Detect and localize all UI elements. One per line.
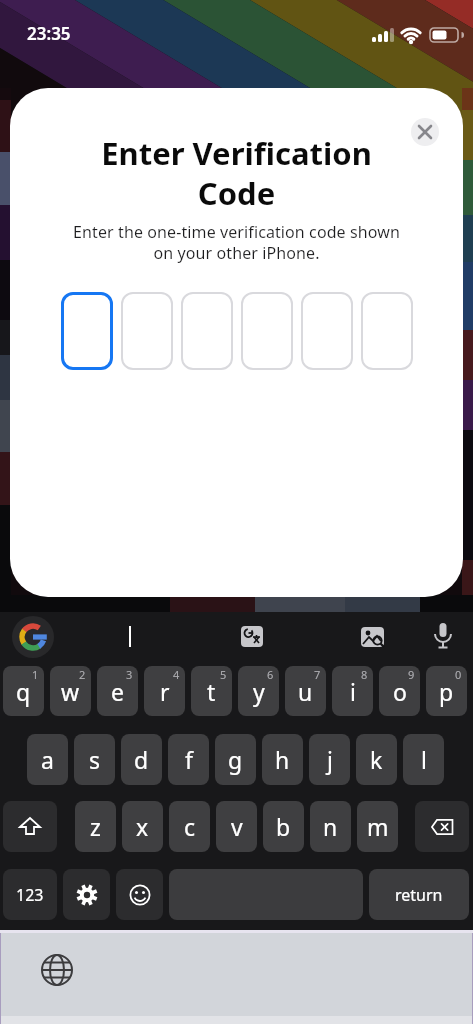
button[interactable] bbox=[121, 292, 173, 370]
staticText: w bbox=[61, 676, 80, 707]
button[interactable]: n bbox=[310, 801, 351, 852]
staticText: 4 bbox=[173, 667, 180, 682]
staticText: 1 bbox=[32, 667, 39, 682]
staticText: j bbox=[327, 744, 333, 775]
button[interactable] bbox=[360, 624, 387, 650]
button[interactable] bbox=[63, 869, 110, 920]
button[interactable]: v bbox=[216, 801, 257, 852]
button[interactable] bbox=[40, 953, 74, 987]
staticText: y bbox=[253, 676, 265, 707]
staticText: a bbox=[41, 744, 54, 775]
button[interactable]: i bbox=[332, 666, 373, 716]
button[interactable]: k bbox=[356, 734, 397, 785]
button[interactable]: a bbox=[27, 734, 68, 785]
staticText: z bbox=[90, 811, 101, 842]
staticText: x bbox=[136, 811, 149, 842]
staticText: 9 bbox=[408, 667, 415, 682]
button[interactable]: p bbox=[426, 666, 467, 716]
staticText: 3 bbox=[126, 667, 133, 682]
button[interactable] bbox=[361, 292, 413, 370]
button[interactable]: w bbox=[50, 666, 91, 716]
button[interactable]: y bbox=[238, 666, 279, 716]
staticText: t bbox=[207, 676, 216, 707]
button[interactable] bbox=[240, 624, 266, 650]
button[interactable] bbox=[3, 801, 57, 852]
button[interactable]: x bbox=[122, 801, 163, 852]
button[interactable] bbox=[181, 292, 233, 370]
button[interactable] bbox=[12, 616, 54, 658]
staticText: 7 bbox=[314, 667, 321, 682]
button[interactable]: 123 bbox=[3, 869, 57, 920]
staticText: l bbox=[421, 744, 427, 775]
button[interactable] bbox=[301, 292, 353, 370]
button[interactable] bbox=[61, 292, 113, 370]
button[interactable] bbox=[116, 869, 163, 920]
staticText: h bbox=[275, 744, 290, 775]
staticText: q bbox=[16, 676, 31, 707]
button[interactable]: b bbox=[263, 801, 304, 852]
button[interactable]: f bbox=[168, 734, 209, 785]
button[interactable]: s bbox=[74, 734, 115, 785]
staticText: 5 bbox=[220, 667, 227, 682]
button[interactable]: z bbox=[75, 801, 116, 852]
staticText: m bbox=[367, 811, 389, 842]
button[interactable]: return bbox=[369, 869, 469, 920]
staticText: return bbox=[395, 884, 443, 906]
staticText: g bbox=[228, 744, 243, 775]
staticText: n bbox=[323, 811, 338, 842]
button[interactable]: j bbox=[309, 734, 350, 785]
staticText: p bbox=[439, 676, 454, 707]
staticText: k bbox=[370, 744, 383, 775]
staticText: b bbox=[276, 811, 291, 842]
staticText: 23:35 bbox=[27, 22, 71, 45]
staticText: 123 bbox=[16, 884, 44, 906]
staticText: i bbox=[350, 676, 356, 707]
button[interactable]: h bbox=[262, 734, 303, 785]
staticText: d bbox=[134, 744, 149, 775]
button[interactable] bbox=[241, 292, 293, 370]
button[interactable]: m bbox=[357, 801, 398, 852]
button[interactable]: u bbox=[285, 666, 326, 716]
button[interactable] bbox=[415, 801, 469, 852]
button[interactable] bbox=[432, 622, 454, 652]
button[interactable]: o bbox=[379, 666, 420, 716]
staticText: Enter Verification Code bbox=[10, 132, 463, 214]
staticText: u bbox=[298, 676, 313, 707]
button[interactable]: r bbox=[144, 666, 185, 716]
staticText: 0 bbox=[455, 667, 462, 682]
staticText: f bbox=[185, 744, 193, 775]
button[interactable]: d bbox=[121, 734, 162, 785]
staticText: e bbox=[111, 676, 124, 707]
staticText: o bbox=[393, 676, 407, 707]
button[interactable]: l bbox=[403, 734, 444, 785]
staticText: c bbox=[184, 811, 196, 842]
button[interactable]: g bbox=[215, 734, 256, 785]
staticText: Enter the one-time verification code sho… bbox=[10, 221, 463, 264]
button[interactable]: c bbox=[169, 801, 210, 852]
button[interactable]: e bbox=[97, 666, 138, 716]
staticText: v bbox=[231, 811, 243, 842]
button[interactable]: q bbox=[3, 666, 44, 716]
button[interactable] bbox=[411, 118, 439, 146]
staticText: 8 bbox=[361, 667, 368, 682]
button[interactable]: t bbox=[191, 666, 232, 716]
staticText: 6 bbox=[267, 667, 274, 682]
staticText: r bbox=[160, 676, 170, 707]
staticText: 2 bbox=[79, 667, 86, 682]
staticText: s bbox=[89, 744, 101, 775]
